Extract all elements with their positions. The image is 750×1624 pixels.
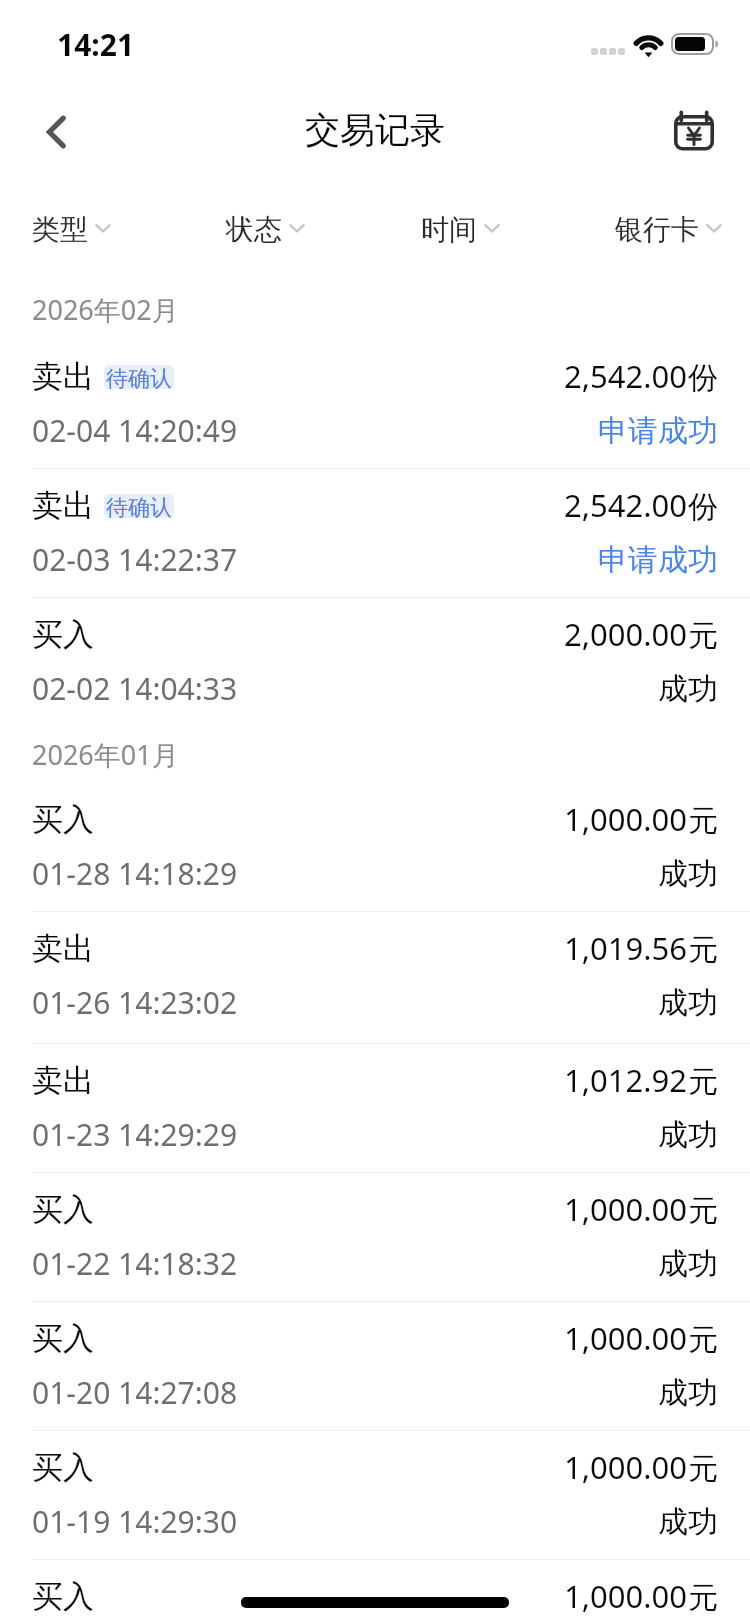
staticText: 元 — [688, 931, 718, 969]
staticText: 买入 — [32, 1190, 94, 1229]
staticText: 成功 — [658, 984, 718, 1022]
staticText: 成功 — [658, 855, 718, 893]
button[interactable]: 买入 — [0, 1301, 750, 1430]
staticText: 买入 — [32, 1577, 94, 1616]
button[interactable]: 卖出 — [0, 911, 750, 1040]
staticText: 申请成功 — [598, 412, 718, 450]
staticText: 14:21 — [57, 24, 135, 65]
staticText: 交易记录 — [305, 108, 445, 152]
button[interactable]: 卖出 — [0, 339, 750, 468]
staticText: 1,000.00 — [564, 1188, 688, 1230]
staticText: 01-28 14:18:29 — [32, 853, 238, 894]
staticText: 1,000.00 — [564, 1575, 688, 1617]
staticText: 元 — [688, 802, 718, 840]
staticText: 01-22 14:18:32 — [32, 1243, 238, 1284]
staticText: 成功 — [658, 1116, 718, 1154]
staticText: 2026年02月 — [32, 291, 179, 328]
staticText: 成功 — [658, 1374, 718, 1412]
staticText: 元 — [688, 1192, 718, 1230]
staticText: 01-26 14:23:02 — [32, 982, 238, 1023]
staticText: 02-02 14:04:33 — [32, 668, 238, 709]
staticText: 元 — [688, 1450, 718, 1488]
staticText: 2026年01月 — [32, 736, 179, 773]
staticText: 元 — [688, 1321, 718, 1359]
staticText: 成功 — [658, 1245, 718, 1283]
button[interactable]: 状态 — [226, 205, 305, 260]
button[interactable]: 时间 — [421, 205, 500, 260]
staticText: 1,012.92 — [564, 1059, 688, 1101]
staticText: 待确认 — [106, 365, 172, 389]
button[interactable]: Back — [25, 102, 87, 164]
staticText: 买入 — [32, 615, 94, 654]
staticText: 1,000.00 — [564, 798, 688, 840]
staticText: 状态 — [226, 212, 282, 247]
button[interactable]: 买入 — [0, 1559, 750, 1624]
staticText: 份 — [688, 488, 718, 526]
staticText: 1,019.56 — [564, 927, 688, 969]
staticText: 申请成功 — [598, 541, 718, 579]
staticText: 01-20 14:27:08 — [32, 1372, 238, 1413]
staticText: 01-19 14:29:30 — [32, 1501, 238, 1542]
button[interactable]: 买入 — [0, 597, 750, 726]
staticText: 卖出 — [32, 1061, 94, 1100]
staticText: 2,542.00 — [564, 484, 688, 526]
staticText: 卖出 — [32, 357, 94, 396]
staticText: 1,000.00 — [564, 1317, 688, 1359]
staticText: 2,000.00 — [564, 613, 688, 655]
staticText: 1,000.00 — [564, 1446, 688, 1488]
staticText: 成功 — [658, 670, 718, 708]
staticText: 时间 — [421, 212, 477, 247]
button[interactable]: 卖出 — [0, 1043, 750, 1172]
staticText: 02-04 14:20:49 — [32, 410, 238, 451]
button[interactable]: 类型 — [32, 205, 111, 260]
button[interactable]: 卖出 — [0, 468, 750, 597]
staticText: 元 — [688, 1579, 718, 1617]
staticText: 元 — [688, 1063, 718, 1101]
staticText: 类型 — [32, 212, 88, 247]
button[interactable]: 买入 — [0, 782, 750, 911]
button[interactable]: 银行卡 — [615, 205, 722, 260]
staticText: 卖出 — [32, 486, 94, 525]
staticText: 2,542.00 — [564, 355, 688, 397]
staticText: 成功 — [658, 1503, 718, 1541]
staticText: 元 — [688, 617, 718, 655]
staticText: 买入 — [32, 800, 94, 839]
staticText: 买入 — [32, 1448, 94, 1487]
staticText: 买入 — [32, 1319, 94, 1358]
button[interactable]: 买入 — [0, 1430, 750, 1559]
button[interactable]: 买入 — [0, 1172, 750, 1301]
staticText: 银行卡 — [615, 212, 699, 247]
staticText: 待确认 — [106, 494, 172, 518]
staticText: 01-23 14:29:29 — [32, 1114, 238, 1155]
staticText: 02-03 14:22:37 — [32, 539, 238, 580]
button[interactable]: Calendar — [662, 101, 726, 165]
staticText: 卖出 — [32, 929, 94, 968]
staticText: 份 — [688, 359, 718, 397]
